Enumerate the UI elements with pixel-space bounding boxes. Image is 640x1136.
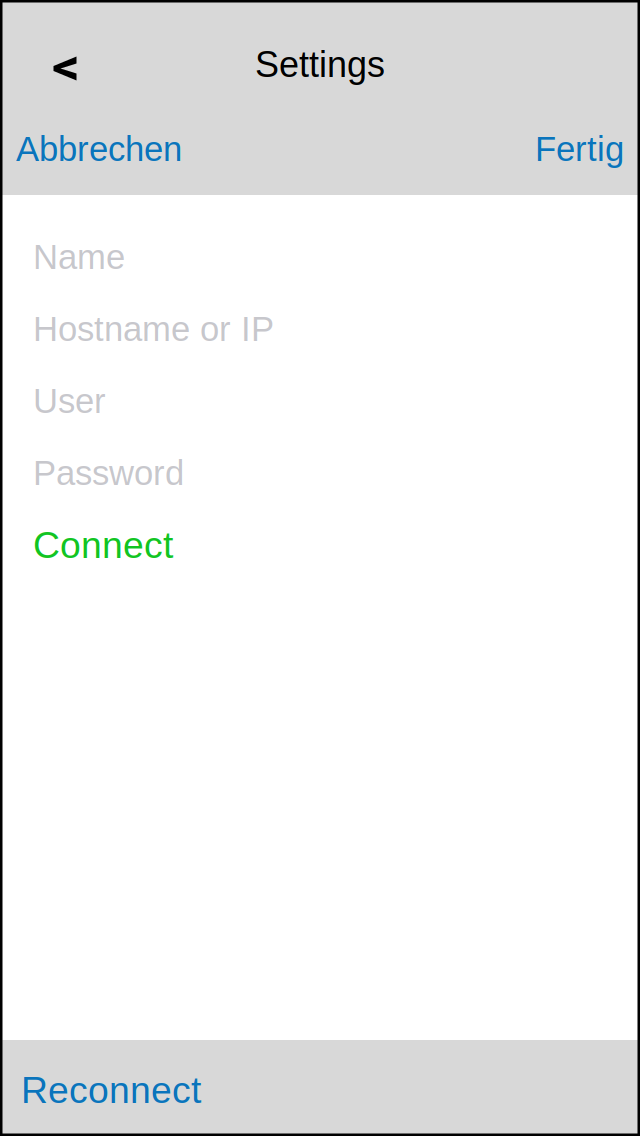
button[interactable]: User xyxy=(0,365,640,437)
button[interactable]: Name xyxy=(0,221,640,293)
button[interactable]: Connect xyxy=(0,509,640,581)
button[interactable]: Fertig xyxy=(535,117,624,181)
button[interactable]: Password xyxy=(0,437,640,509)
button[interactable]: Hostname or IP xyxy=(0,293,640,365)
button[interactable]: Abbrechen xyxy=(16,117,182,181)
staticText: Password xyxy=(33,454,184,492)
staticText: Abbrechen xyxy=(16,130,182,168)
staticText: Name xyxy=(33,238,125,276)
staticText: Connect xyxy=(33,524,173,566)
staticText: User xyxy=(33,382,106,420)
staticText: Hostname or IP xyxy=(33,310,274,348)
staticText: Fertig xyxy=(535,130,624,168)
staticText: Reconnect xyxy=(21,1069,201,1111)
staticText: Settings xyxy=(255,44,385,85)
button[interactable]: Back xyxy=(42,42,88,94)
button[interactable]: Reconnect xyxy=(21,1059,201,1121)
